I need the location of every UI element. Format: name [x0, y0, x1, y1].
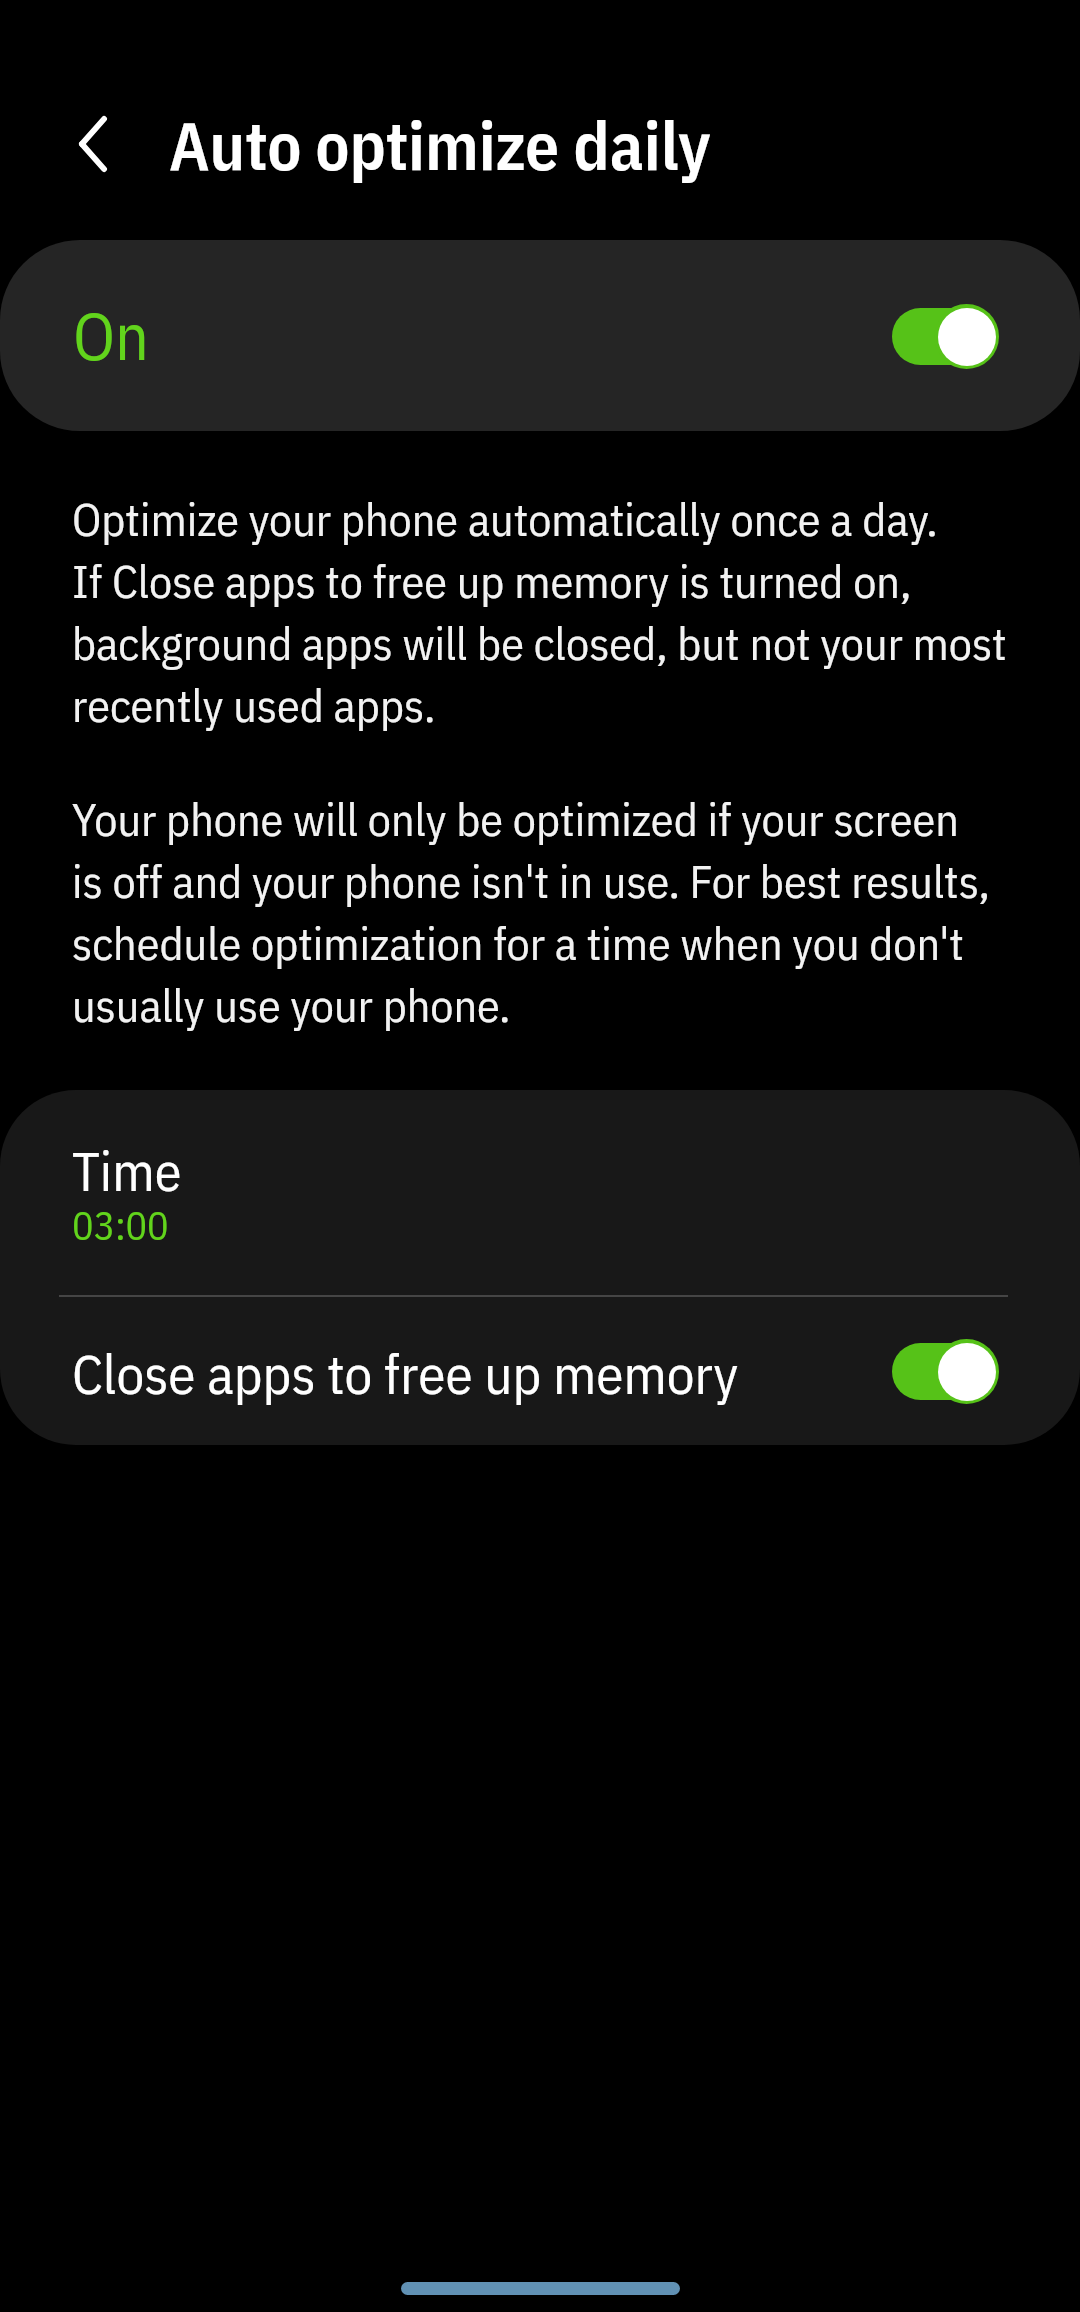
staticText: Auto optimize daily	[169, 101, 711, 188]
staticText: Close apps to free up memory	[72, 1338, 892, 1410]
button[interactable]: Navigate up	[55, 105, 131, 183]
button[interactable]: On	[0, 240, 1080, 431]
button[interactable]: Time	[0, 1090, 1080, 1295]
button[interactable]: Toggle, on	[892, 303, 999, 369]
staticText: Your phone will only be optimized if you…	[72, 787, 991, 1035]
staticText: Optimize your phone automatically once a…	[72, 487, 1007, 735]
staticText: 03:00	[72, 1199, 169, 1251]
button[interactable]: Toggle, on	[892, 1338, 999, 1404]
staticText: On	[73, 292, 149, 378]
button[interactable]: Close apps to free up memory	[0, 1297, 1080, 1445]
staticText: Time	[72, 1136, 182, 1206]
